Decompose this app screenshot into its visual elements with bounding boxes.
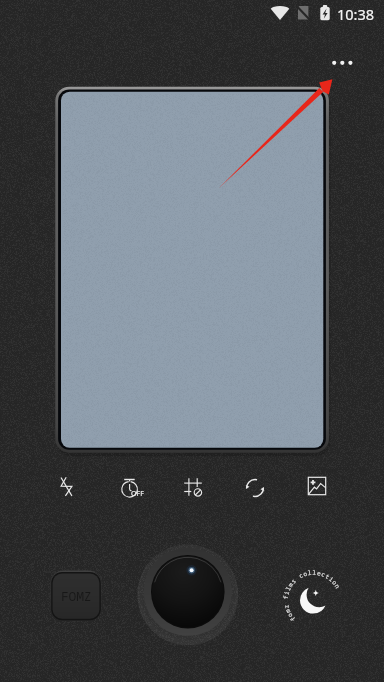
staticText: FOMZ [61,587,92,605]
button[interactable]: Flash off [45,466,87,508]
button[interactable]: Switch camera [234,467,276,509]
button[interactable]: FOMZ [52,572,101,620]
button[interactable]: More options [322,43,362,83]
staticText: OFF [131,489,145,499]
button[interactable]: Gallery [296,465,338,507]
button[interactable]: Shutter [132,536,244,648]
button[interactable]: Timer off [108,466,150,508]
button[interactable]: Fomz films collection [272,557,358,643]
button[interactable]: Grid off [172,466,214,508]
staticText: 10:38 [337,4,375,24]
